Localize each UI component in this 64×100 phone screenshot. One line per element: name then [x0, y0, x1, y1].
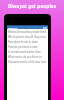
button[interactable]: How do you learn a new language	[7, 45, 48, 50]
staticText: How do you learn a new language	[8, 45, 47, 49]
button[interactable]: What music do you listen to daily	[7, 55, 48, 60]
staticText: Best place to eat in town tonight	[8, 40, 47, 44]
staticText: Biwayat	[8, 26, 18, 29]
staticText: What music do you listen to daily	[8, 55, 47, 59]
staticText: Biwayat get peoples opinion	[0, 3, 64, 10]
staticText: Wanna know what people think about	[8, 30, 47, 34]
button[interactable]: Best place to eat in town tonight	[7, 40, 48, 45]
staticText: Favourite movie of all time here	[8, 60, 47, 64]
button[interactable]: Is remote work better than office	[7, 50, 48, 55]
button[interactable]: Favourite movie of all time here	[7, 60, 48, 65]
staticText: Is remote work better than office	[8, 50, 47, 54]
button[interactable]: Wanna know what people think about	[7, 30, 48, 35]
staticText: Which phone should I buy next year?	[8, 35, 47, 39]
button[interactable]: Biwayat	[7, 26, 48, 29]
button[interactable]: Which phone should I buy next year?	[7, 35, 48, 40]
